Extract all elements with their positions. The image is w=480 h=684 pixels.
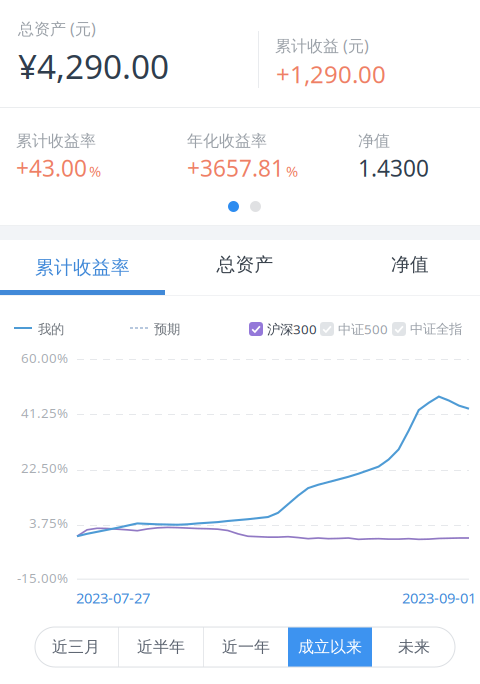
button[interactable]: 近三月 [34, 627, 118, 667]
button[interactable]: 近半年 [119, 627, 203, 667]
staticText: 近三月 [52, 637, 100, 657]
staticText: 41.25% [21, 404, 68, 422]
staticText: 2023-07-27 [76, 588, 150, 607]
staticText: 中证全指 [410, 321, 462, 337]
staticText: 预期 [154, 321, 180, 337]
staticText: +1,290.00 [276, 58, 386, 90]
button[interactable]: 中证全指 [392, 320, 462, 338]
staticText: 总资产 [216, 253, 273, 276]
staticText: ¥4,290.00 [18, 44, 169, 88]
staticText: % [286, 161, 298, 181]
staticText: 近半年 [137, 637, 185, 657]
staticText: 3.75% [29, 514, 68, 532]
staticText: 22.50% [21, 459, 68, 477]
staticText: 累计收益率 [16, 131, 96, 151]
button[interactable]: 累计收益率 [0, 241, 165, 295]
staticText: +3657.81 [187, 153, 284, 183]
button[interactable]: 未来 [372, 627, 456, 667]
button[interactable]: 中证500 [320, 320, 388, 338]
button[interactable]: 沪深300 [249, 320, 317, 338]
button[interactable]: 净值 [328, 241, 480, 286]
staticText: 60.00% [21, 349, 68, 367]
staticText: 成立以来 [298, 637, 362, 657]
staticText: +43.00 [16, 153, 87, 183]
staticText: 累计收益率 [35, 256, 130, 279]
staticText: 总资产 (元) [18, 18, 96, 39]
staticText: 我的 [38, 321, 64, 337]
staticText: 近一年 [222, 637, 270, 657]
staticText: 沪深300 [267, 320, 317, 338]
staticText: 未来 [398, 637, 430, 657]
staticText: 1.4300 [358, 153, 429, 183]
button[interactable]: 成立以来 [288, 627, 372, 667]
staticText: -15.00% [17, 569, 68, 587]
staticText: 年化收益率 [187, 131, 267, 151]
staticText: 累计收益 (元) [275, 35, 369, 56]
staticText: % [89, 161, 101, 181]
staticText: 净值 [358, 131, 390, 151]
button[interactable]: 近一年 [204, 627, 288, 667]
button[interactable]: 总资产 [162, 241, 328, 286]
staticText: 中证500 [338, 320, 388, 338]
staticText: 2023-09-01 [402, 588, 476, 607]
staticText: 净值 [391, 253, 429, 276]
